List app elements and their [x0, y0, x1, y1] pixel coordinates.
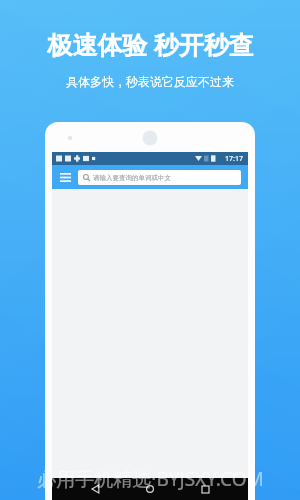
- staticText: 极速体验 秒开秒查: [47, 27, 254, 61]
- button[interactable]: 请输入要查询的单词或中文: [78, 170, 241, 185]
- staticText: 请输入要查询的单词或中文: [93, 174, 171, 182]
- button[interactable]: Menu: [57, 169, 74, 186]
- button[interactable]: Recent apps: [194, 478, 216, 500]
- staticText: 必用手机精选·BYJSXY.COM: [37, 466, 264, 492]
- button[interactable]: Back: [85, 478, 107, 500]
- button[interactable]: Home: [139, 478, 161, 500]
- staticText: 具体多快，秒表说它反应不过来: [66, 74, 234, 89]
- staticText: 17:17: [225, 154, 243, 164]
